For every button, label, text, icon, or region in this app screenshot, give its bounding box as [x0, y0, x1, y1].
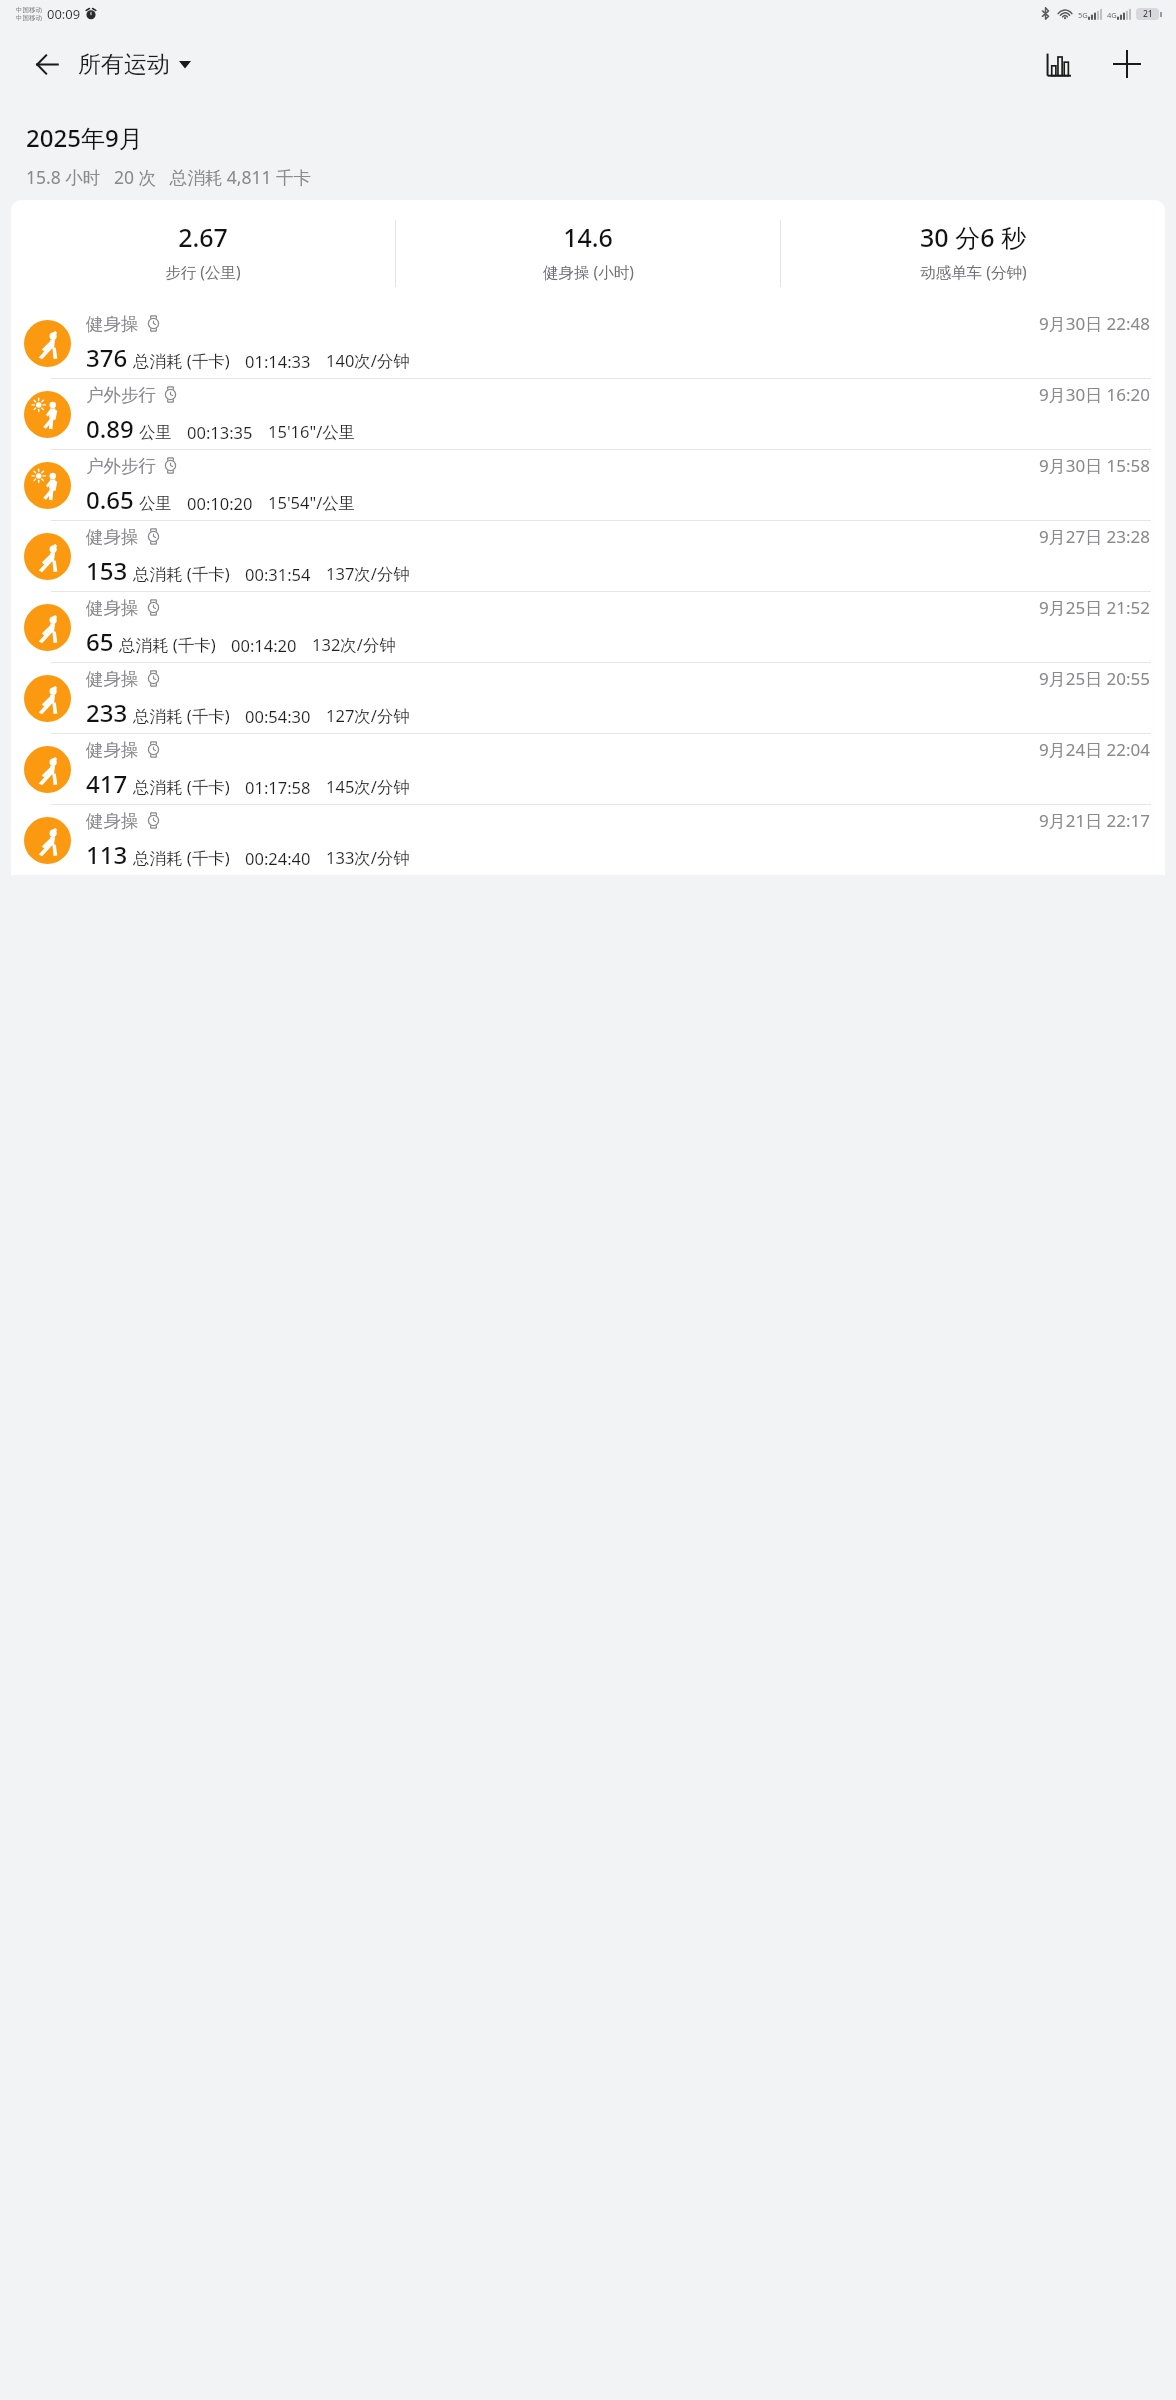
staticText: 133次/分钟 — [326, 846, 410, 869]
staticText: 总消耗 (千卡) — [133, 846, 230, 869]
staticText: 健身操 — [86, 597, 139, 619]
staticText: 2025年9月 — [26, 121, 143, 154]
staticText: 户外步行 — [86, 455, 156, 477]
staticText: 145次/分钟 — [326, 775, 410, 798]
staticText: 113 — [86, 838, 128, 871]
staticText: 127次/分钟 — [326, 704, 410, 727]
staticText: 15'54"/公里 — [268, 491, 356, 514]
staticText: 137次/分钟 — [326, 562, 410, 585]
staticText: 户外步行 — [86, 384, 156, 406]
staticText: 9月30日 15:58 — [1039, 454, 1151, 477]
staticText: 9月25日 20:55 — [1039, 667, 1151, 690]
staticText: 65 — [86, 625, 114, 658]
staticText: 公里 — [139, 493, 172, 514]
staticText: 21 — [1143, 8, 1153, 20]
staticText: 00:31:54 — [245, 563, 311, 585]
button[interactable]: 户外步行 — [11, 379, 1165, 449]
staticText: 公里 — [139, 422, 172, 443]
staticText: 总消耗 (千卡) — [133, 349, 230, 372]
staticText: 健身操 — [86, 526, 139, 548]
button[interactable]: 健身操 — [11, 521, 1165, 591]
staticText: 步行 (公里) — [165, 261, 241, 282]
staticText: 中国移动 — [16, 14, 42, 22]
staticText: 总消耗 (千卡) — [133, 704, 230, 727]
staticText: 15.8 小时 20 次 总消耗 4,811 千卡 — [26, 165, 311, 189]
staticText: 00:14:20 — [231, 634, 297, 656]
button[interactable]: 添加 — [1100, 37, 1154, 91]
button[interactable]: 健身操 — [11, 805, 1165, 875]
staticText: 132次/分钟 — [312, 633, 396, 656]
button[interactable]: 14.6 — [396, 220, 780, 282]
staticText: 中国移动 — [16, 6, 42, 14]
staticText: 9月30日 22:48 — [1039, 312, 1151, 335]
staticText: 00:09 — [47, 5, 81, 23]
staticText: 总消耗 (千卡) — [133, 775, 230, 798]
staticText: 9月27日 23:28 — [1039, 525, 1151, 548]
staticText: 233 — [86, 696, 128, 729]
staticText: 01:14:33 — [245, 350, 311, 372]
staticText: 417 — [86, 767, 128, 800]
staticText: 01:17:58 — [245, 776, 311, 798]
staticText: 00:13:35 — [187, 421, 253, 443]
button[interactable]: 健身操 — [11, 308, 1165, 378]
staticText: 总消耗 (千卡) — [119, 633, 216, 656]
staticText: 4G — [1107, 10, 1117, 20]
staticText: 健身操 — [86, 313, 139, 335]
staticText: 5G — [1078, 10, 1088, 20]
button[interactable]: 户外步行 — [11, 450, 1165, 520]
staticText: 动感单车 (分钟) — [920, 261, 1027, 282]
staticText: 所有运动 — [78, 50, 170, 79]
staticText: 0.89 — [86, 412, 134, 445]
staticText: 376 — [86, 341, 128, 374]
staticText: 140次/分钟 — [326, 349, 410, 372]
staticText: 14.6 — [563, 220, 613, 254]
button[interactable]: 健身操 — [11, 734, 1165, 804]
staticText: 健身操 — [86, 739, 139, 761]
button[interactable]: 统计图表 — [1032, 37, 1086, 91]
staticText: 健身操 (小时) — [543, 261, 634, 282]
button[interactable]: 2.67 — [11, 220, 395, 282]
staticText: 9月21日 22:17 — [1039, 809, 1151, 832]
staticText: 9月30日 16:20 — [1039, 383, 1151, 406]
staticText: 30 分6 秒 — [920, 220, 1026, 254]
staticText: 153 — [86, 554, 128, 587]
staticText: 9月25日 21:52 — [1039, 596, 1151, 619]
staticText: 00:10:20 — [187, 492, 253, 514]
staticText: 总消耗 (千卡) — [133, 562, 230, 585]
button[interactable]: 健身操 — [11, 663, 1165, 733]
staticText: 00:24:40 — [245, 847, 311, 869]
staticText: 9月24日 22:04 — [1039, 738, 1151, 761]
staticText: 0.65 — [86, 483, 134, 516]
button[interactable]: 30 分6 秒 — [781, 220, 1165, 282]
staticText: 健身操 — [86, 668, 139, 690]
button[interactable]: 健身操 — [11, 592, 1165, 662]
button[interactable]: 返回 — [20, 37, 74, 91]
staticText: 15'16"/公里 — [268, 420, 356, 443]
staticText: 2.67 — [178, 220, 228, 254]
staticText: 健身操 — [86, 810, 139, 832]
staticText: 00:54:30 — [245, 705, 311, 727]
button[interactable]: 所有运动 — [74, 42, 195, 87]
